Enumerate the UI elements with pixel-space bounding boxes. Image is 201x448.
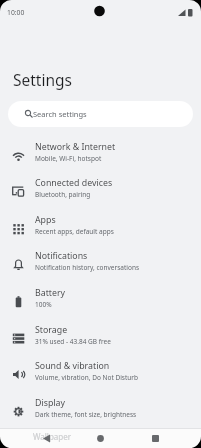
button[interactable]: Connected devices xyxy=(0,173,201,210)
staticText: Volume, vibration, Do Not Disturb xyxy=(35,373,139,382)
staticText: Settings xyxy=(13,69,72,90)
button[interactable]: Battery xyxy=(0,283,201,320)
staticText: 10:00 xyxy=(7,8,25,17)
staticText: 100% xyxy=(35,300,52,309)
staticText: 31% used - 43.84 GB free xyxy=(35,337,111,346)
staticText: Notifications xyxy=(35,250,88,262)
staticText: Network & Internet xyxy=(35,141,116,153)
staticText: Display xyxy=(35,397,66,409)
staticText: Recent apps, default apps xyxy=(35,227,114,236)
staticText: Storage xyxy=(35,324,68,336)
staticText: Sound & vibration xyxy=(35,360,110,372)
button[interactable]: Sound & vibration xyxy=(0,356,201,393)
staticText: Apps xyxy=(35,214,56,226)
staticText: Search settings xyxy=(33,109,87,119)
button[interactable] xyxy=(146,429,164,447)
button[interactable]: Storage xyxy=(0,320,201,357)
staticText: Mobile, Wi-Fi, hotspot xyxy=(35,154,102,163)
button[interactable]: Notifications xyxy=(0,246,201,283)
staticText: Battery xyxy=(35,287,66,299)
button[interactable] xyxy=(37,429,55,447)
button[interactable]: Apps xyxy=(0,210,201,247)
staticText: Bluetooth, pairing xyxy=(35,190,91,199)
button[interactable] xyxy=(91,429,109,447)
staticText: Connected devices xyxy=(35,177,113,189)
staticText: Wallpaper xyxy=(33,431,72,442)
staticText: Dark theme, font size, brightness xyxy=(35,410,137,419)
staticText: Notification history, conversations xyxy=(35,263,140,272)
button[interactable]: Display xyxy=(0,393,201,430)
button[interactable]: Search settings xyxy=(8,101,193,127)
button[interactable]: Network & Internet xyxy=(0,137,201,174)
